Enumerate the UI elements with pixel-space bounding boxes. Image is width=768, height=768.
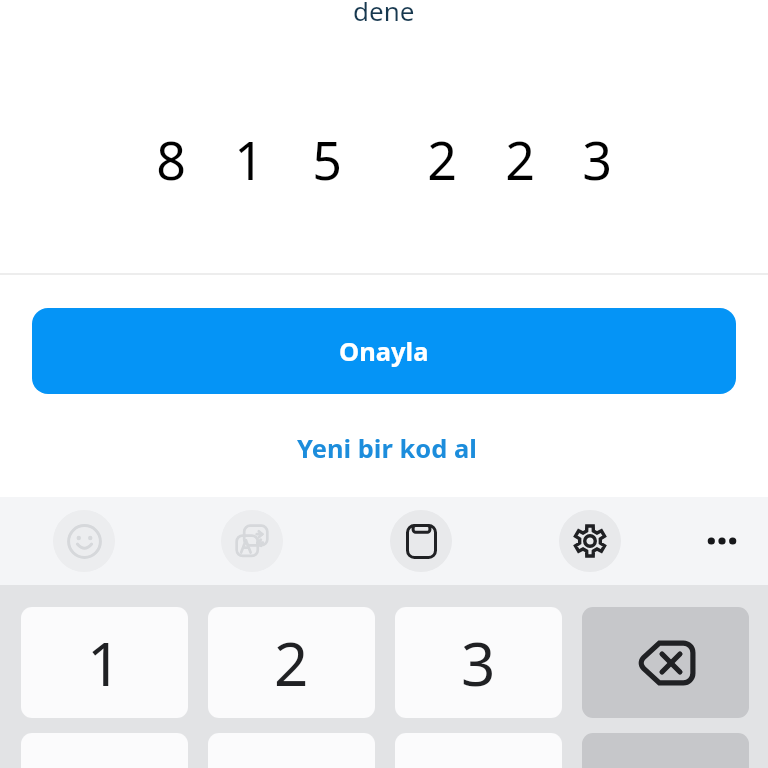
button[interactable]: 3 (395, 607, 562, 718)
button[interactable]: Clipboard (390, 510, 452, 572)
staticText: 3 (461, 622, 496, 704)
button[interactable]: More options (691, 510, 753, 572)
button[interactable]: Settings (559, 510, 621, 572)
button[interactable]: Yeni bir kod al (297, 431, 477, 466)
staticText: 3 (582, 124, 612, 186)
button[interactable]: Translate (221, 510, 283, 572)
button[interactable]: Backspace (582, 607, 749, 718)
staticText: dene (353, 0, 415, 28)
staticText: 2 (427, 124, 457, 186)
button[interactable]: Onayla (32, 308, 736, 394)
button[interactable]: 2 (208, 607, 375, 718)
staticText: 1 (87, 622, 122, 704)
button[interactable]: 1 (21, 607, 188, 718)
staticText: 8 (156, 124, 186, 186)
staticText: Yeni bir kod al (297, 431, 477, 466)
staticText: 5 (312, 124, 342, 186)
staticText: Onayla (339, 334, 429, 369)
staticText: 2 (505, 124, 535, 186)
staticText: 2 (274, 622, 309, 704)
button[interactable]: Emoji (53, 510, 115, 572)
staticText: 1 (234, 124, 264, 186)
